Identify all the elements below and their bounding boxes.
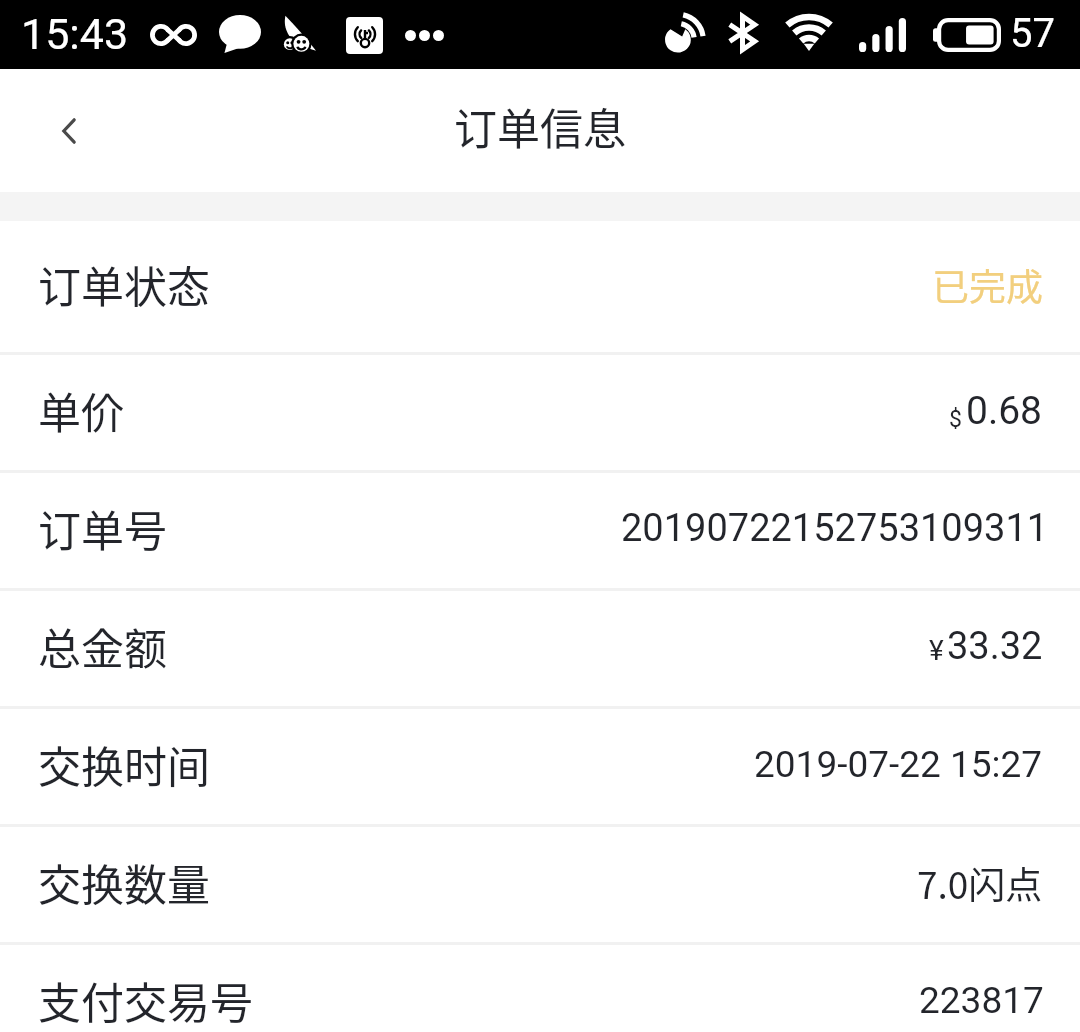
- staticText: 57: [1010, 10, 1055, 57]
- staticText: 订单号: [38, 497, 167, 559]
- button[interactable]: Back: [29, 91, 109, 171]
- staticText: $: [949, 406, 962, 433]
- staticText: 33.32: [947, 624, 1043, 669]
- button[interactable]: 交换数量: [0, 827, 1080, 942]
- staticText: 交换时间: [38, 733, 210, 795]
- staticText: 订单状态: [38, 253, 210, 315]
- staticText: 0.68: [966, 388, 1043, 434]
- staticText: 20190722152753109311: [621, 506, 1049, 551]
- staticText: ¥: [929, 634, 944, 667]
- staticText: 总金额: [38, 615, 167, 677]
- button[interactable]: 总金额: [0, 591, 1080, 706]
- staticText: 已完成: [932, 258, 1043, 312]
- button[interactable]: 支付交易号: [0, 945, 1080, 1032]
- staticText: 223817: [919, 979, 1044, 1022]
- staticText: 订单信息: [454, 95, 626, 157]
- staticText: 单价: [38, 379, 124, 441]
- staticText: 7.0闪点: [917, 856, 1043, 910]
- button[interactable]: 订单号: [0, 473, 1080, 588]
- staticText: 支付交易号: [38, 969, 253, 1031]
- staticText: 交换数量: [38, 851, 210, 913]
- button[interactable]: 单价: [0, 355, 1080, 470]
- staticText: 15:43: [21, 9, 129, 59]
- button[interactable]: 订单状态: [0, 221, 1080, 352]
- staticText: 2019-07-22 15:27: [754, 743, 1043, 786]
- button[interactable]: 交换时间: [0, 709, 1080, 824]
